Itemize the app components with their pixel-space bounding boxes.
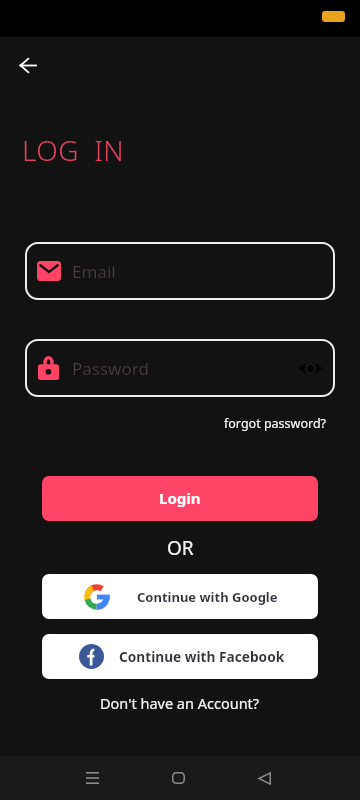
staticText: Continue with Google [137, 588, 278, 606]
button[interactable]: Password [25, 339, 335, 397]
staticText: OR [167, 535, 194, 561]
staticText: Email [72, 260, 116, 283]
button[interactable]: Home [156, 756, 201, 800]
button[interactable]: Show password [295, 353, 325, 383]
button[interactable]: Back [242, 756, 287, 800]
button[interactable]: Recent apps [70, 756, 115, 800]
staticText: Continue with Facebook [119, 647, 285, 666]
staticText: Password [72, 357, 149, 380]
button[interactable]: Continue with Google [42, 574, 318, 619]
button[interactable]: Continue with Facebook [42, 634, 318, 679]
staticText: Login [159, 488, 201, 508]
button[interactable]: Don't have an Account? [100, 693, 260, 713]
button[interactable]: forgot password? [224, 415, 327, 432]
staticText: LOG IN [22, 131, 125, 169]
button[interactable]: Back [6, 43, 50, 87]
button[interactable]: Login [42, 476, 318, 521]
button[interactable]: Email [25, 242, 335, 300]
